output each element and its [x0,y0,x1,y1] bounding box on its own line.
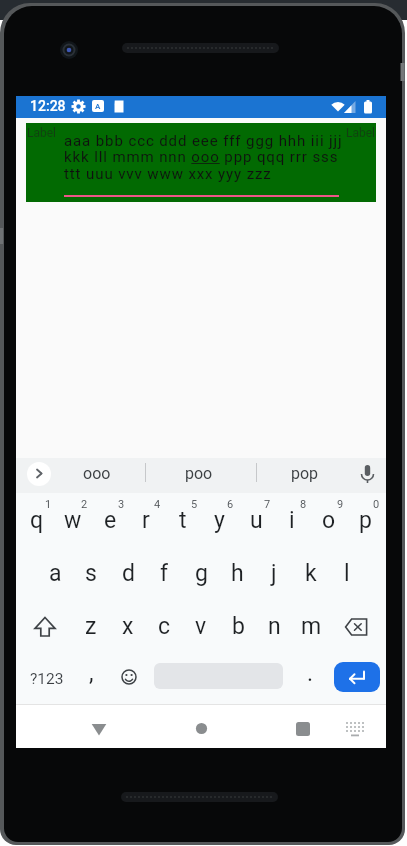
staticText: s [85,560,97,587]
staticText: r [142,507,150,534]
staticText: m [301,613,322,640]
staticText: i [289,507,295,534]
staticText: l [344,560,350,587]
staticText: g [195,560,208,587]
staticText: 6 [227,498,234,510]
staticText: 0 [373,498,380,510]
staticText: , [89,660,94,687]
staticText: n [268,613,281,640]
staticText: 9 [337,498,344,510]
staticText: pop [291,464,319,483]
staticText: z [85,613,97,640]
staticText: a [49,560,62,587]
staticText: q [30,507,44,534]
staticText: e [104,507,117,534]
staticText: x [122,613,134,640]
staticText: t [179,507,187,534]
staticText: 4 [154,498,161,510]
staticText: o [322,507,336,534]
staticText: Label [346,126,376,140]
staticText: 7 [264,498,271,510]
staticText: 12:28 [30,98,66,114]
staticText: 1 [45,498,52,510]
staticText: . [307,660,314,687]
staticText: aaa bbb ccc ddd eee fff ggg hhh iii jjj … [64,132,343,183]
staticText: u [250,507,263,534]
staticText: ?123 [30,670,64,688]
staticText: 5 [191,498,198,510]
staticText: Label [27,126,57,140]
staticText: d [122,560,135,587]
staticText: 3 [118,498,125,510]
staticText: c [158,613,171,640]
staticText: 2 [81,498,88,510]
staticText: f [160,560,168,587]
staticText: k [305,560,317,587]
staticText: A [95,102,101,111]
staticText: b [232,613,245,640]
staticText: j [271,560,277,587]
staticText: w [64,507,82,534]
staticText: y [214,507,225,534]
staticText: v [195,613,207,640]
staticText: poo [185,464,213,483]
staticText: p [359,507,372,534]
staticText: h [231,560,244,587]
staticText: 8 [300,498,307,510]
staticText: ooo [83,464,111,483]
